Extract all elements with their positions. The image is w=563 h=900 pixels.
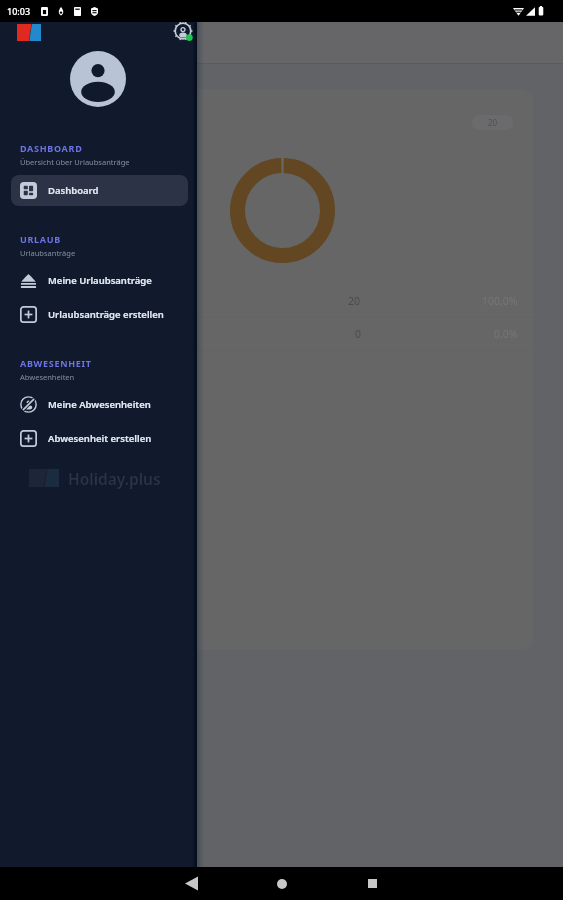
staticText: Urlaubsanträge erstellen: [48, 308, 164, 321]
staticText: Übersicht über Urlaubsanträge: [20, 157, 130, 167]
staticText: Meine Urlaubsanträge: [48, 274, 152, 287]
staticText: Meine Abwesenheiten: [48, 398, 151, 411]
staticText: 10:03: [7, 5, 31, 17]
button[interactable]: Meine Urlaubsanträge: [11, 265, 188, 296]
staticText: Dashboard: [48, 184, 99, 197]
staticText: 20: [348, 294, 361, 308]
staticText: Abwesenheit erstellen: [48, 432, 152, 445]
staticText: Abwesenheiten: [20, 372, 75, 382]
staticText: Holiday.plus: [68, 468, 161, 489]
button[interactable]: Meine Abwesenheiten: [11, 389, 188, 420]
staticText: 0,0%: [494, 327, 518, 341]
staticText: 0: [355, 327, 362, 341]
staticText: Urlaubsanträge: [20, 248, 76, 258]
button[interactable]: Back: [170, 868, 212, 899]
button[interactable]: Urlaubsanträge erstellen: [11, 299, 188, 330]
button[interactable]: Dashboard: [11, 175, 188, 206]
button[interactable]: Abwesenheit erstellen: [11, 423, 188, 454]
button[interactable]: Recent apps: [351, 868, 393, 899]
staticText: URLAUB: [20, 233, 61, 245]
staticText: ABWESENHEIT: [20, 357, 92, 369]
staticText: DASHBOARD: [20, 142, 83, 154]
staticText: 100,0%: [482, 294, 518, 308]
staticText: 20: [488, 117, 498, 128]
button[interactable]: Home: [261, 868, 303, 899]
button[interactable]: Settings: [172, 20, 194, 42]
